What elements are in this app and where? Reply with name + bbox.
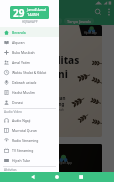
staticText: Kualitas xyxy=(38,53,80,67)
staticText: Hijrah Tube xyxy=(12,158,31,163)
staticText: Audio Ngaji xyxy=(12,118,31,123)
button[interactable]: Semua xyxy=(2,18,22,24)
staticText: Waktu Shalat & Kiblat xyxy=(12,70,47,75)
button[interactable]: More options xyxy=(103,6,114,17)
button[interactable]: Hijrah App xyxy=(3,144,102,174)
staticText: Donasi xyxy=(12,100,24,105)
staticText: Baca xyxy=(6,129,14,133)
staticText: Hijrah App xyxy=(58,161,72,165)
button[interactable]: Amal Yatim xyxy=(0,57,59,67)
button[interactable]: Audio Ngaji xyxy=(0,115,59,125)
button[interactable]: Waktu Shalat & Kiblat xyxy=(0,67,59,77)
staticText: Beranda xyxy=(12,30,26,35)
button[interactable]: Murrotal Quran xyxy=(0,125,59,135)
button[interactable]: TV Streaming xyxy=(0,145,59,155)
staticText: Imani xyxy=(38,67,68,81)
button[interactable]: Baca xyxy=(4,128,16,134)
staticText: Amal Yatim xyxy=(12,60,30,65)
button[interactable]: Video xyxy=(45,18,62,24)
staticText: Radio Streaming xyxy=(12,138,39,143)
staticText: Audio Video xyxy=(4,110,22,114)
staticText: Kumpulan hikmah xyxy=(38,108,64,112)
staticText: 1445H xyxy=(27,12,40,17)
button[interactable]: 29 xyxy=(10,6,49,19)
button[interactable]: Alquran xyxy=(0,37,59,47)
staticText: HIJRAHAPP xyxy=(22,20,38,24)
staticText: Alquran xyxy=(12,40,25,45)
button[interactable]: Hijrah Tube xyxy=(0,155,59,165)
staticText: Tanya Jawab xyxy=(67,19,91,24)
button[interactable]: Search xyxy=(92,6,103,17)
staticText: Artikel xyxy=(27,19,40,24)
button[interactable]: Dakwah ustadz xyxy=(0,77,59,87)
button[interactable]: Artikel xyxy=(24,18,43,24)
button[interactable]: Beranda xyxy=(0,27,59,37)
button[interactable]: Tanya Jawab xyxy=(64,18,94,24)
button[interactable]: Donasi xyxy=(0,97,59,107)
staticText: 29 xyxy=(13,6,25,19)
staticText: Hadist Muslim xyxy=(12,90,35,95)
button[interactable]: Radio Streaming xyxy=(0,135,59,145)
button[interactable]: Buka Musibah xyxy=(0,47,59,57)
staticText: Dakwah ustadz xyxy=(12,80,37,85)
staticText: Murrotal Quran xyxy=(12,128,37,133)
staticText: Aktivitas xyxy=(4,168,17,172)
button[interactable]: Hadist Muslim xyxy=(0,87,59,97)
staticText: di Sambang xyxy=(38,101,65,107)
staticText: Buka Musibah xyxy=(12,50,35,55)
staticText: TV Streaming xyxy=(12,148,34,153)
staticText: Hijrah App xyxy=(84,31,97,35)
staticText: Perenungan xyxy=(38,95,66,101)
button[interactable]: Hijrah App xyxy=(3,25,102,137)
staticText: Jumadil Awwal xyxy=(27,8,47,12)
